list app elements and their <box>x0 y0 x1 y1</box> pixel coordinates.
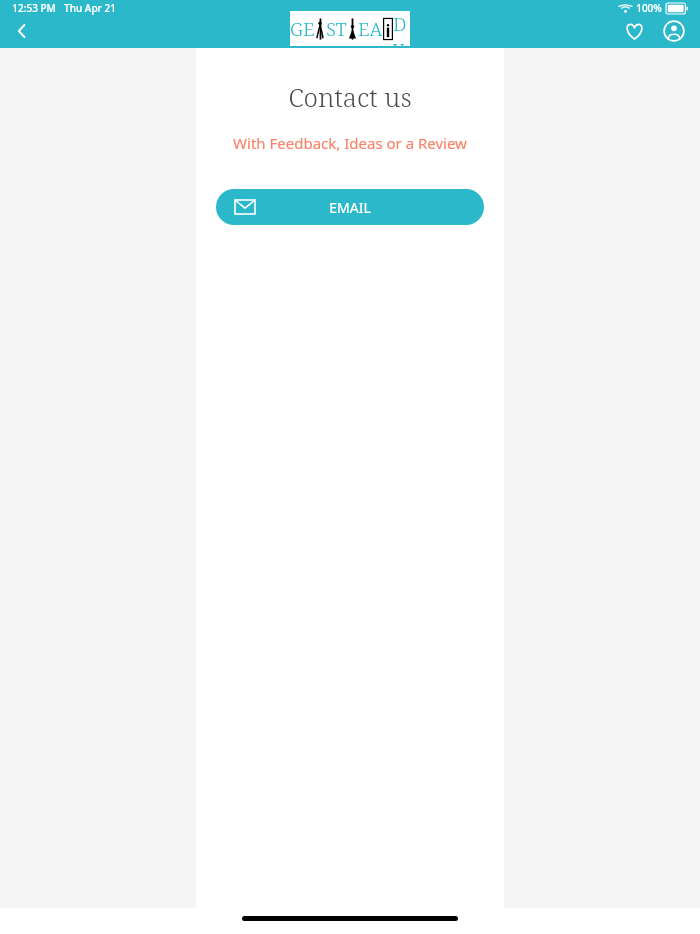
staticText: Thu Apr 21 <box>64 1 116 15</box>
button[interactable]: Get Steady logo <box>290 11 410 46</box>
button[interactable]: Back <box>0 9 44 53</box>
staticText: 12:53 PM <box>12 1 56 15</box>
button[interactable]: Account <box>654 11 694 51</box>
staticText: 100% <box>636 1 662 15</box>
staticText: EMAIL <box>329 198 371 217</box>
button[interactable]: EMAIL <box>216 189 484 225</box>
staticText: With Feedback, Ideas or a Review <box>233 133 467 153</box>
staticText: DY <box>393 11 410 46</box>
staticText: EA <box>358 16 383 42</box>
staticText: GE <box>290 16 315 42</box>
staticText: Contact us <box>288 79 412 114</box>
button[interactable]: Favourites <box>614 11 654 51</box>
staticText: ST <box>326 16 347 42</box>
